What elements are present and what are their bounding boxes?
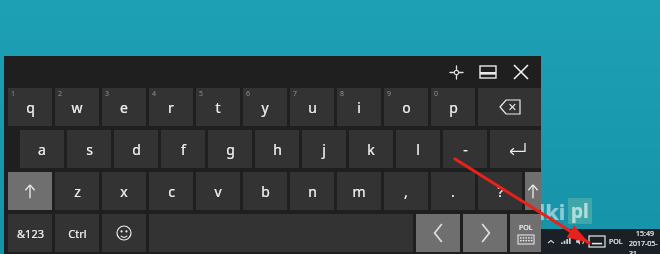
button[interactable]: Volume	[575, 236, 586, 247]
staticText: pl	[571, 198, 589, 224]
button[interactable]: -	[443, 130, 487, 168]
button[interactable]: h	[255, 130, 299, 168]
staticText: h	[273, 140, 282, 159]
staticText: i	[357, 98, 361, 117]
button[interactable]: j	[302, 130, 346, 168]
staticText: d	[132, 140, 141, 159]
staticText: ,	[404, 182, 408, 201]
staticText: f	[181, 140, 186, 159]
button[interactable]: s	[67, 130, 111, 168]
staticText: m	[352, 182, 366, 201]
staticText: r	[168, 98, 174, 117]
button[interactable]: Close	[507, 58, 535, 86]
button[interactable]: g	[208, 130, 252, 168]
staticText: .	[451, 182, 455, 201]
button[interactable]: Shift	[8, 172, 52, 210]
staticText: b	[261, 182, 270, 201]
staticText: ?	[497, 182, 504, 201]
button[interactable]: Touch keyboard	[589, 236, 605, 247]
button[interactable]: a	[20, 130, 64, 168]
staticText: 2017-05-31	[629, 239, 660, 254]
staticText: s	[86, 140, 93, 159]
button[interactable]: 6	[243, 88, 287, 126]
button[interactable]: Language POL	[510, 214, 541, 252]
staticText: 3	[105, 89, 110, 99]
button[interactable]: 3	[102, 88, 146, 126]
staticText: v	[214, 182, 222, 201]
button[interactable]: 9	[384, 88, 428, 126]
staticText: instalki	[484, 196, 566, 226]
button[interactable]: n	[290, 172, 334, 210]
button[interactable]: Right	[463, 214, 507, 252]
button[interactable]: Network	[561, 236, 572, 247]
staticText: w	[71, 98, 83, 117]
staticText: e	[120, 98, 128, 117]
button[interactable]: Move keyboard	[443, 59, 469, 85]
button[interactable]: 5	[196, 88, 240, 126]
button[interactable]: k	[349, 130, 393, 168]
staticText: p	[449, 98, 458, 117]
button[interactable]: m	[337, 172, 381, 210]
staticText: 8	[340, 89, 345, 99]
button[interactable]: Left	[416, 214, 460, 252]
button[interactable]: x	[102, 172, 146, 210]
staticText: 0	[434, 89, 439, 99]
staticText: 7	[293, 89, 298, 99]
button[interactable]: c	[149, 172, 193, 210]
staticText: o	[402, 98, 411, 117]
button[interactable]: 4	[149, 88, 193, 126]
staticText: 15:49	[636, 229, 654, 239]
button[interactable]: 2	[55, 88, 99, 126]
button[interactable]: 7	[290, 88, 334, 126]
button[interactable]: b	[243, 172, 287, 210]
staticText: 4	[152, 89, 157, 99]
staticText: q	[26, 98, 35, 117]
staticText: &123	[17, 226, 44, 241]
staticText: 5	[199, 89, 204, 99]
staticText: l	[416, 140, 420, 159]
staticText: 1	[11, 89, 16, 99]
button[interactable]: d	[114, 130, 158, 168]
button[interactable]: .	[431, 172, 475, 210]
button[interactable]: ?	[478, 172, 522, 210]
button[interactable]: Backspace	[478, 88, 541, 126]
staticText: 2	[58, 89, 63, 99]
button[interactable]: POL	[609, 237, 623, 247]
staticText: k	[367, 140, 375, 159]
button[interactable]: 0	[431, 88, 475, 126]
button[interactable]: z	[55, 172, 99, 210]
button[interactable]: Ctrl	[55, 214, 99, 252]
staticText: g	[226, 140, 235, 159]
button[interactable]: Show hidden icons	[545, 236, 557, 248]
staticText: 6	[246, 89, 251, 99]
staticText: Ctrl	[68, 226, 87, 241]
button[interactable]: f	[161, 130, 205, 168]
staticText: z	[74, 182, 81, 201]
button[interactable]: Dock	[475, 59, 501, 85]
staticText: x	[120, 182, 128, 201]
staticText: t	[215, 98, 221, 117]
staticText: 9	[387, 89, 392, 99]
button[interactable]: l	[396, 130, 440, 168]
button[interactable]: &123	[8, 214, 52, 252]
button[interactable]: ,	[384, 172, 428, 210]
staticText: j	[322, 140, 326, 159]
staticText: POL	[519, 223, 533, 233]
staticText: u	[308, 98, 317, 117]
button[interactable]: Shift	[525, 172, 541, 210]
staticText: y	[261, 98, 269, 117]
staticText: a	[38, 140, 46, 159]
button[interactable]: Enter	[490, 130, 541, 168]
staticText: c	[168, 182, 175, 201]
button[interactable]: v	[196, 172, 240, 210]
button[interactable]: 8	[337, 88, 381, 126]
button[interactable]: 1	[8, 88, 52, 126]
staticText: -	[463, 140, 468, 159]
staticText: n	[308, 182, 317, 201]
button[interactable]: Emoji	[102, 214, 146, 252]
